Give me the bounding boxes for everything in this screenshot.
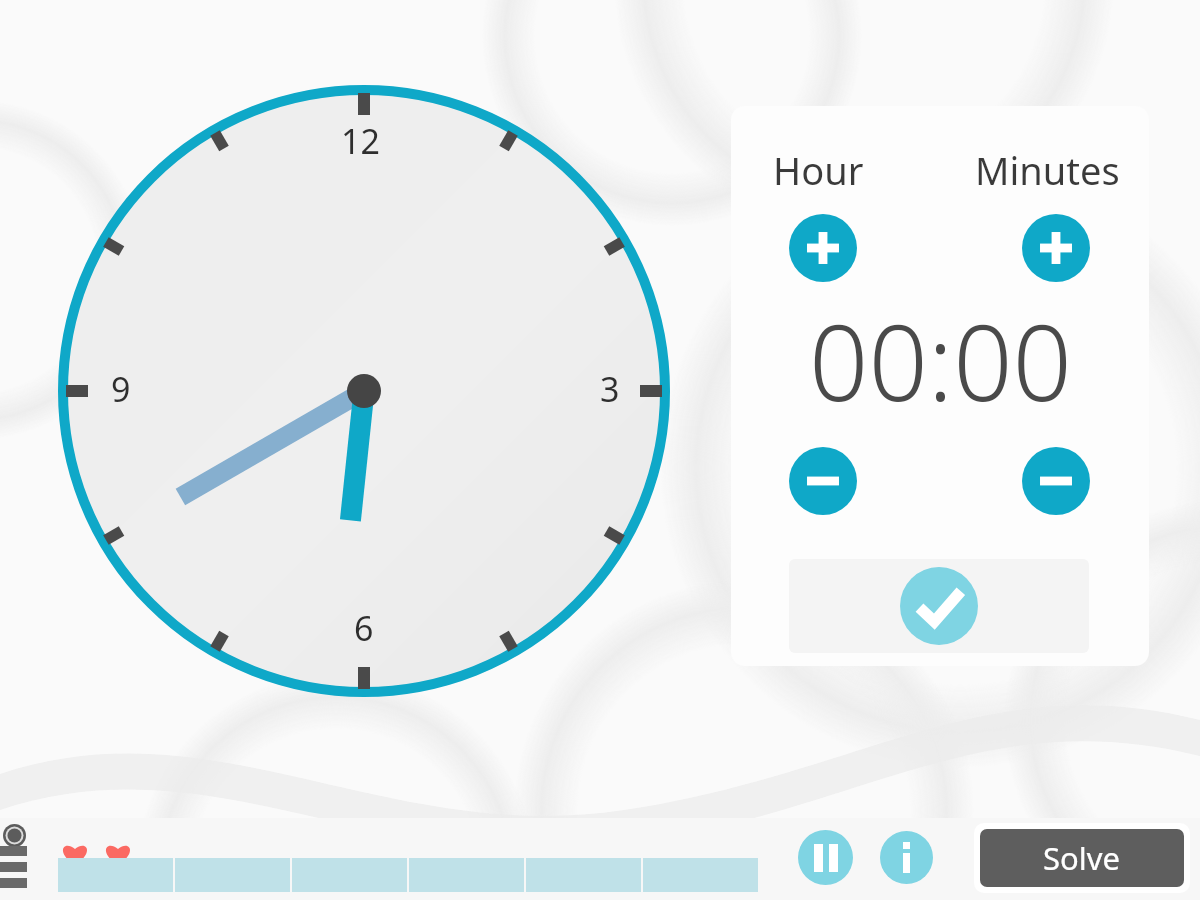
button[interactable]: Confirm time xyxy=(789,559,1089,653)
staticText: Hour xyxy=(773,144,864,196)
button[interactable]: Solve xyxy=(980,829,1184,887)
staticText: Minutes xyxy=(975,144,1120,196)
button[interactable]: Increase minutes xyxy=(1022,214,1090,282)
button[interactable]: Menu badge xyxy=(3,824,26,847)
button[interactable]: Decrease minutes xyxy=(1022,447,1090,515)
staticText: 9 xyxy=(111,366,131,412)
staticText: 6 xyxy=(354,605,374,651)
staticText: 3 xyxy=(600,366,620,412)
staticText: 00:00 xyxy=(809,290,1072,432)
other: Analog clock xyxy=(58,85,670,697)
staticText: 12 xyxy=(341,118,380,164)
button[interactable]: Decrease hour xyxy=(789,447,857,515)
button[interactable]: Increase hour xyxy=(789,214,857,282)
button[interactable]: Open menu xyxy=(0,846,27,894)
button[interactable]: Pause xyxy=(798,830,853,885)
staticText: Solve xyxy=(1043,837,1121,879)
button[interactable]: Info xyxy=(880,831,933,884)
